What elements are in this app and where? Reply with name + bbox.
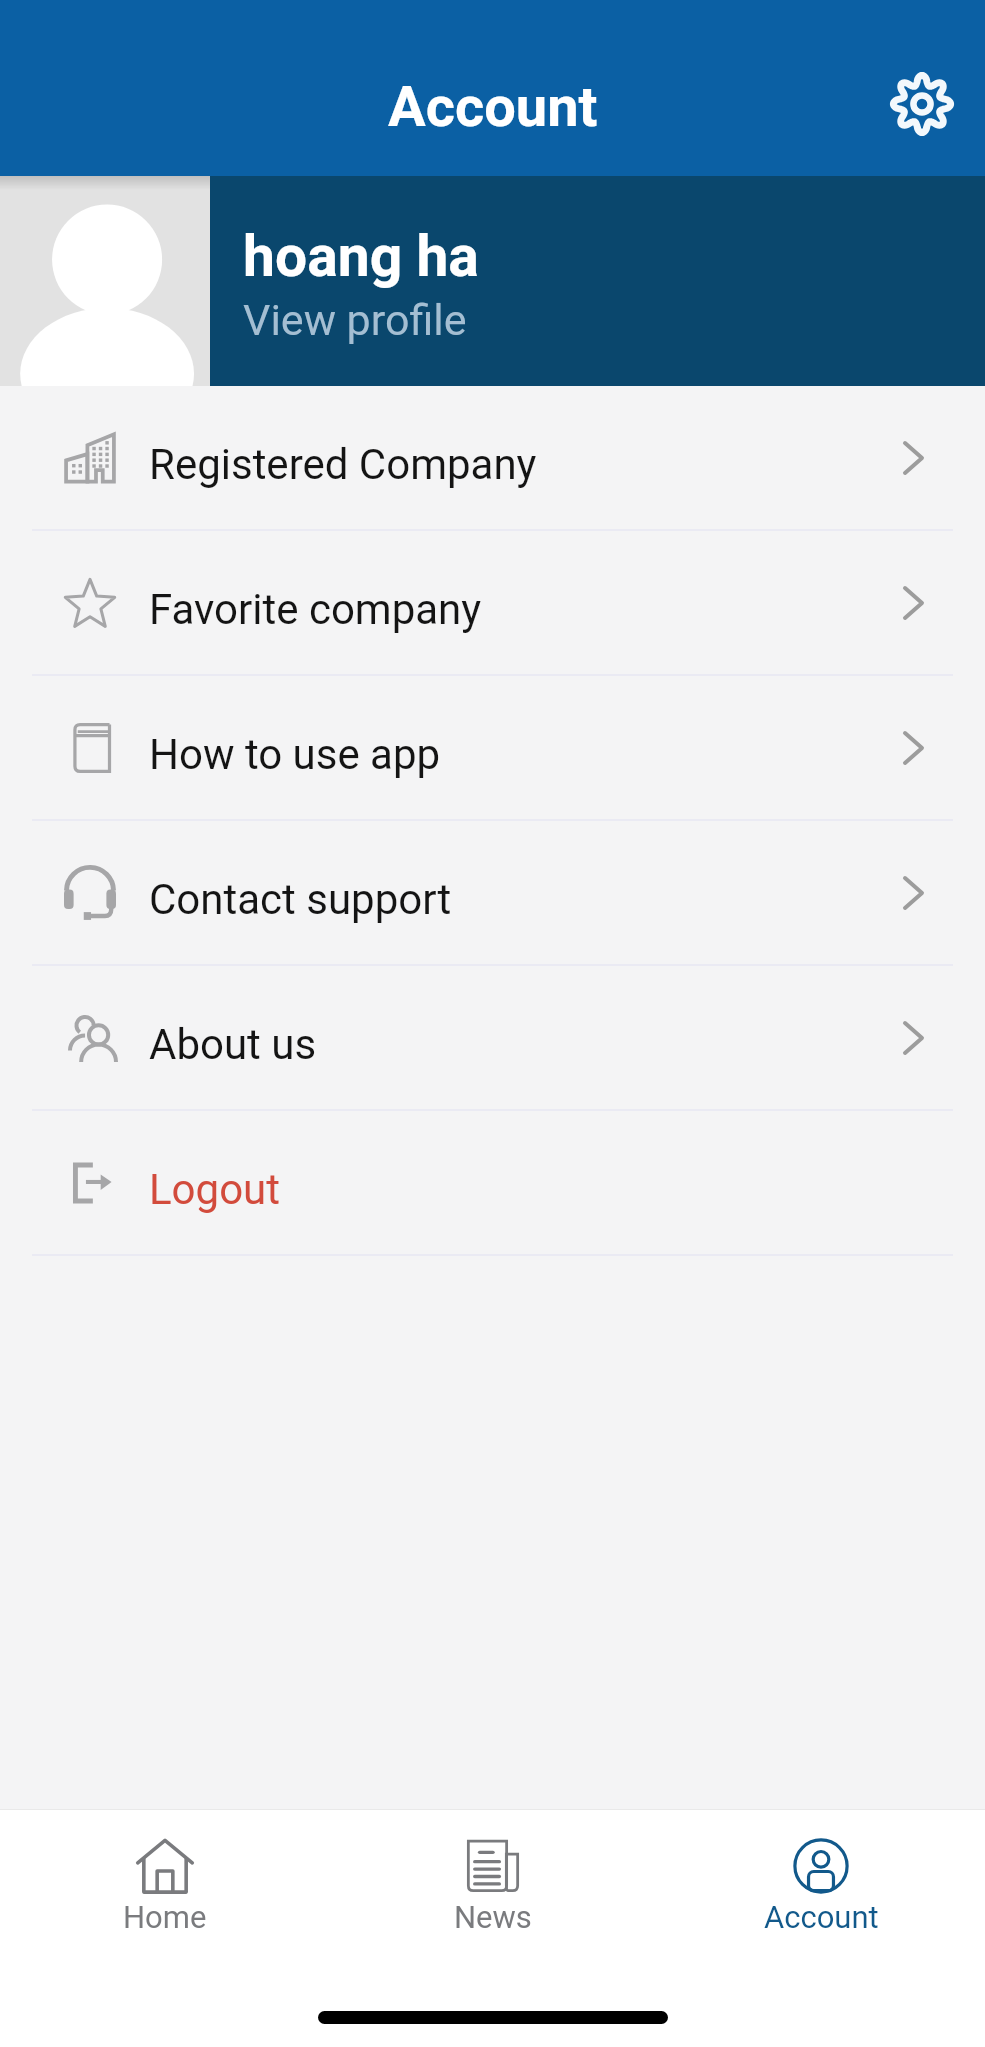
button[interactable]: Contact support (0, 821, 985, 964)
staticText: Favorite company (149, 585, 482, 634)
button[interactable]: Settings (879, 61, 965, 147)
staticText: Account (764, 1899, 879, 1935)
button[interactable]: Logout (0, 1111, 985, 1254)
staticText: Home (123, 1899, 207, 1935)
button[interactable]: Registered Company (0, 386, 985, 529)
staticText: Contact support (149, 875, 452, 924)
button[interactable]: About us (0, 966, 985, 1109)
staticText: View profile (243, 295, 467, 345)
staticText: News (454, 1899, 532, 1935)
button[interactable]: Account (657, 1837, 985, 1962)
staticText: Logout (149, 1165, 281, 1214)
staticText: About us (149, 1020, 317, 1069)
staticText: How to use app (149, 730, 441, 779)
button[interactable]: Favorite company (0, 531, 985, 674)
button[interactable]: News (329, 1837, 657, 1962)
staticText: Registered Company (149, 440, 537, 489)
button[interactable]: hoang ha (0, 176, 985, 386)
staticText: hoang ha (243, 223, 479, 290)
button[interactable]: How to use app (0, 676, 985, 819)
staticText: Account (388, 74, 598, 140)
button[interactable]: Home (0, 1837, 329, 1962)
